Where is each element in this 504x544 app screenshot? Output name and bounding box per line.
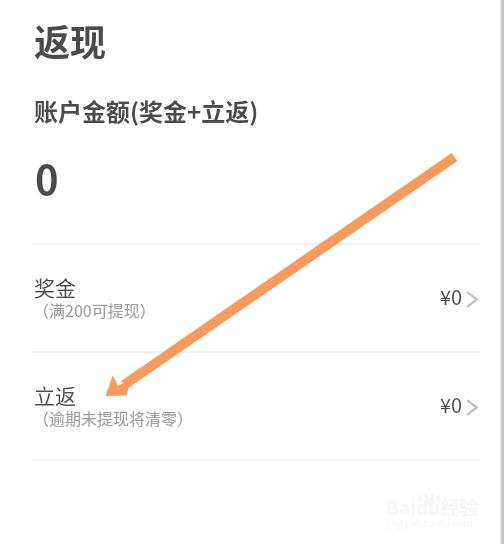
staticText: 返现 [34,14,107,66]
staticText: 立返 [34,380,76,410]
staticText: （逾期未提现将清零） [33,406,194,429]
staticText: Baidu经验 [386,493,479,521]
button[interactable]: 奖金 [0,244,504,352]
staticText: ¥0 [440,390,463,419]
staticText: 账户金额(奖金+立返) [34,93,259,128]
other: 立返 detail [466,399,478,416]
other: 奖金 detail [466,291,478,308]
staticText: （满200可提现） [33,298,156,321]
button[interactable]: 立返 [0,352,504,460]
staticText: 0 [35,149,59,207]
staticText: jingyan.baidu.com [386,515,473,529]
staticText: 奖金 [34,272,76,302]
staticText: ¥0 [440,282,463,311]
